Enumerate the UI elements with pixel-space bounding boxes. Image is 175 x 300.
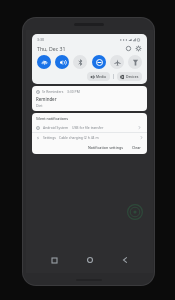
staticText: USB for file transfer: [72, 125, 104, 130]
staticText: Android System: [43, 125, 69, 130]
staticText: Settings: [43, 135, 56, 140]
button[interactable]: Home: [82, 253, 98, 267]
button[interactable]: Flashlight: [128, 55, 142, 69]
staticText: Clear: [132, 145, 141, 150]
button[interactable]: Clear: [130, 144, 143, 151]
button[interactable]: Do not disturb: [92, 55, 106, 69]
button[interactable]: Recents: [46, 253, 62, 267]
button[interactable]: Android System: [32, 123, 147, 132]
button[interactable]: Sound: [55, 55, 69, 69]
staticText: Cable charging (2 h 44 m until full): [59, 135, 99, 140]
staticText: Reminder: [36, 96, 57, 102]
button[interactable]: Bluetooth: [73, 55, 87, 69]
staticText: Silent notifications: [36, 116, 68, 121]
button[interactable]: Media: [87, 72, 110, 81]
button[interactable]: Settings: [134, 44, 142, 52]
button[interactable]: Back: [117, 253, 133, 267]
staticText: 3:30: [37, 37, 45, 42]
button[interactable]: Settings: [32, 133, 147, 142]
button[interactable]: Airplane mode: [110, 55, 124, 69]
staticText: Diet: [36, 103, 43, 108]
staticText: Thu, Dec 31: [37, 45, 66, 52]
staticText: Sr Reminders: [42, 89, 64, 94]
staticText: 3:30 PM: [67, 89, 80, 94]
staticText: Media: [96, 74, 107, 79]
button[interactable]: Wi-Fi: [37, 55, 51, 69]
button[interactable]: Power: [124, 44, 132, 52]
button[interactable]: Sr Reminders: [32, 86, 147, 111]
staticText: Devices: [126, 74, 139, 79]
staticText: Notification settings: [88, 145, 123, 150]
other: Location: [127, 204, 143, 220]
button[interactable]: Devices: [117, 72, 142, 81]
button[interactable]: Notification settings: [86, 144, 125, 151]
